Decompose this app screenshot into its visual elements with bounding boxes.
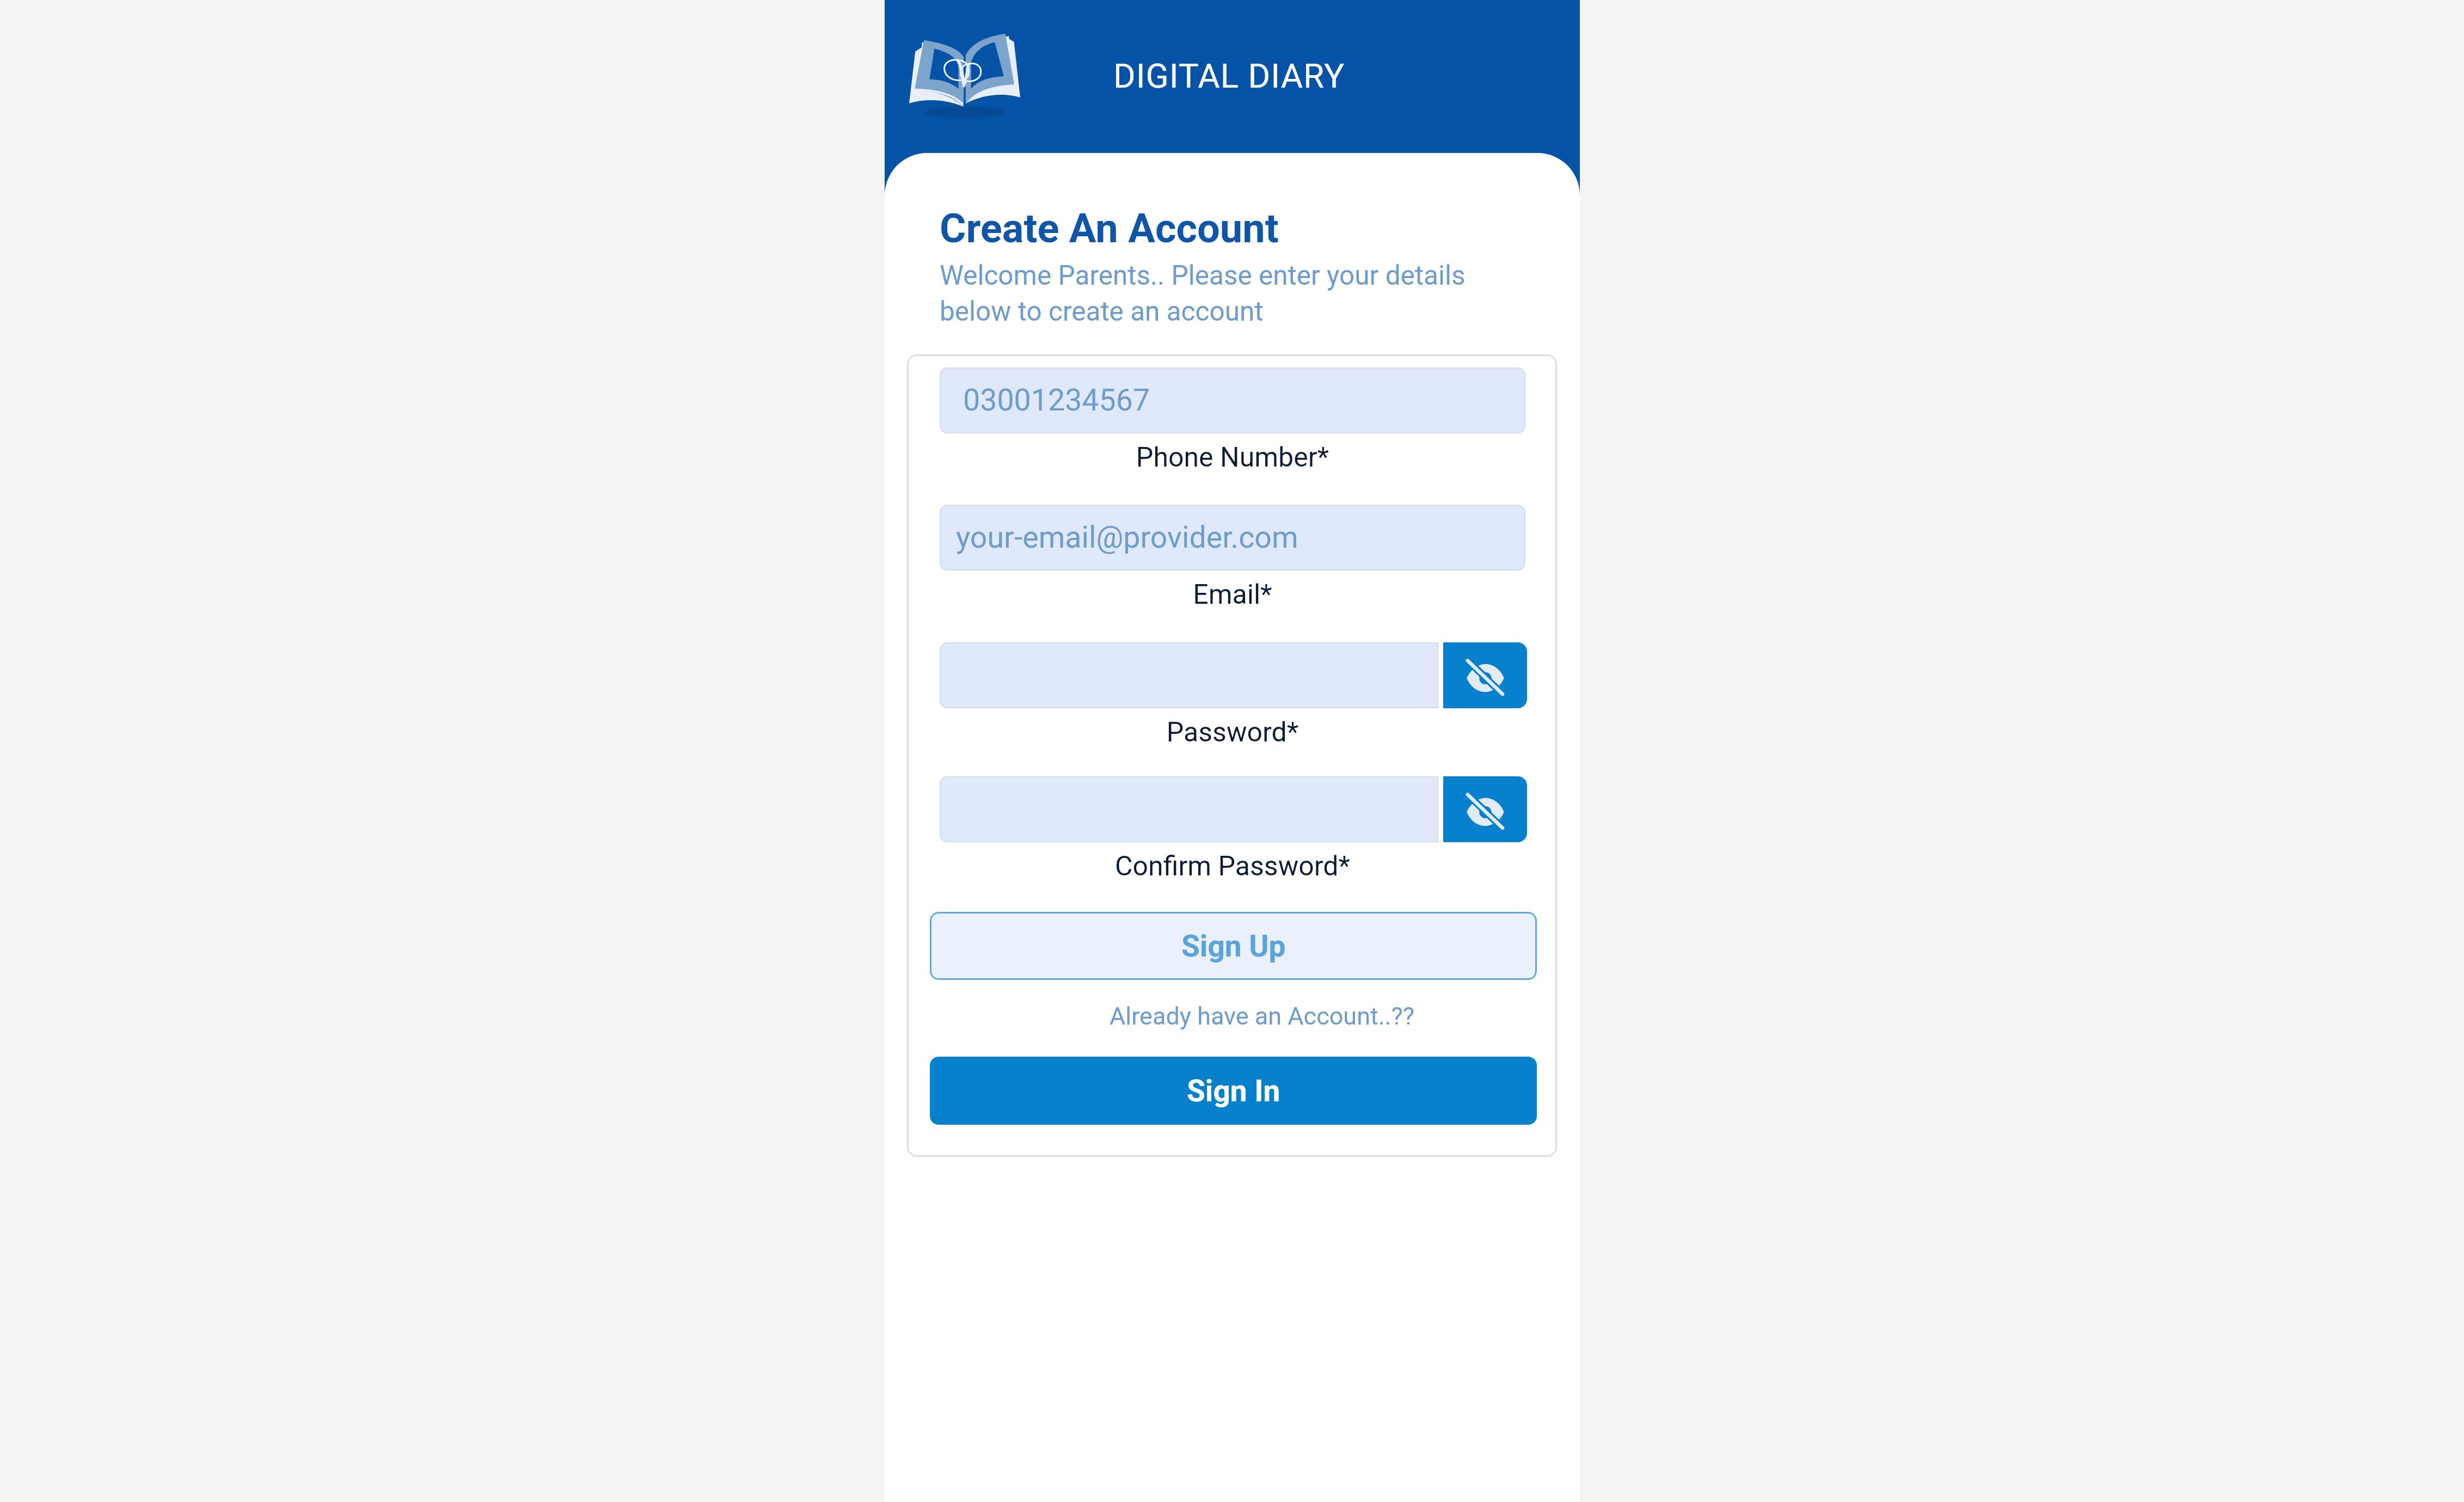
button[interactable]: Toggle password visibility <box>1443 642 1527 708</box>
staticText: Confirm Password* <box>940 850 1525 882</box>
button[interactable]: Toggle password visibility <box>1443 776 1527 842</box>
staticText: your-email@provider.com <box>956 520 1298 555</box>
staticText: Phone Number* <box>940 442 1525 474</box>
button[interactable]: 03001234567 <box>940 367 1525 433</box>
staticText: Create An Account <box>940 205 1279 252</box>
staticText: Sign In <box>1187 1074 1280 1108</box>
button[interactable]: your-email@provider.com <box>940 505 1525 571</box>
button[interactable]: Sign Up <box>930 912 1537 980</box>
button[interactable]: Already have an Account..?? <box>987 1002 1537 1031</box>
button[interactable] <box>940 776 1438 842</box>
staticText: Welcome Parents.. Please enter your deta… <box>940 260 1517 327</box>
staticText: Password* <box>940 716 1525 749</box>
button[interactable]: Sign In <box>930 1057 1537 1125</box>
staticText: Sign Up <box>1181 929 1286 964</box>
staticText: DIGITAL DIARY <box>1113 56 1345 96</box>
staticText: 03001234567 <box>963 383 1150 418</box>
staticText: Email* <box>940 579 1525 611</box>
button[interactable] <box>940 642 1438 708</box>
